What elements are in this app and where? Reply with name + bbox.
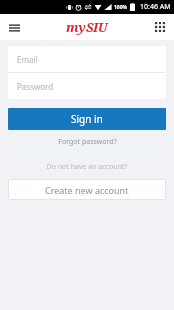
staticText: Forgot password? bbox=[58, 137, 117, 147]
button[interactable]: Password bbox=[8, 73, 166, 99]
staticText: 10:46 AM bbox=[140, 2, 171, 12]
staticText: 100% bbox=[114, 4, 128, 11]
staticText: Do not have an account? bbox=[8, 162, 166, 172]
staticText: SIU bbox=[86, 18, 108, 36]
staticText: Create new account bbox=[45, 184, 129, 196]
staticText: Password bbox=[17, 81, 54, 92]
staticText: my bbox=[66, 18, 86, 36]
button[interactable]: Email bbox=[8, 46, 166, 72]
staticText: Sign in bbox=[71, 112, 103, 126]
button[interactable]: Sign in bbox=[8, 108, 166, 130]
button[interactable]: Open navigation menu bbox=[4, 17, 24, 37]
button[interactable]: Apps bbox=[150, 17, 170, 37]
staticText: Email bbox=[17, 54, 38, 65]
button[interactable]: Forgot password? bbox=[8, 137, 166, 147]
button[interactable]: Create new account bbox=[8, 179, 166, 200]
